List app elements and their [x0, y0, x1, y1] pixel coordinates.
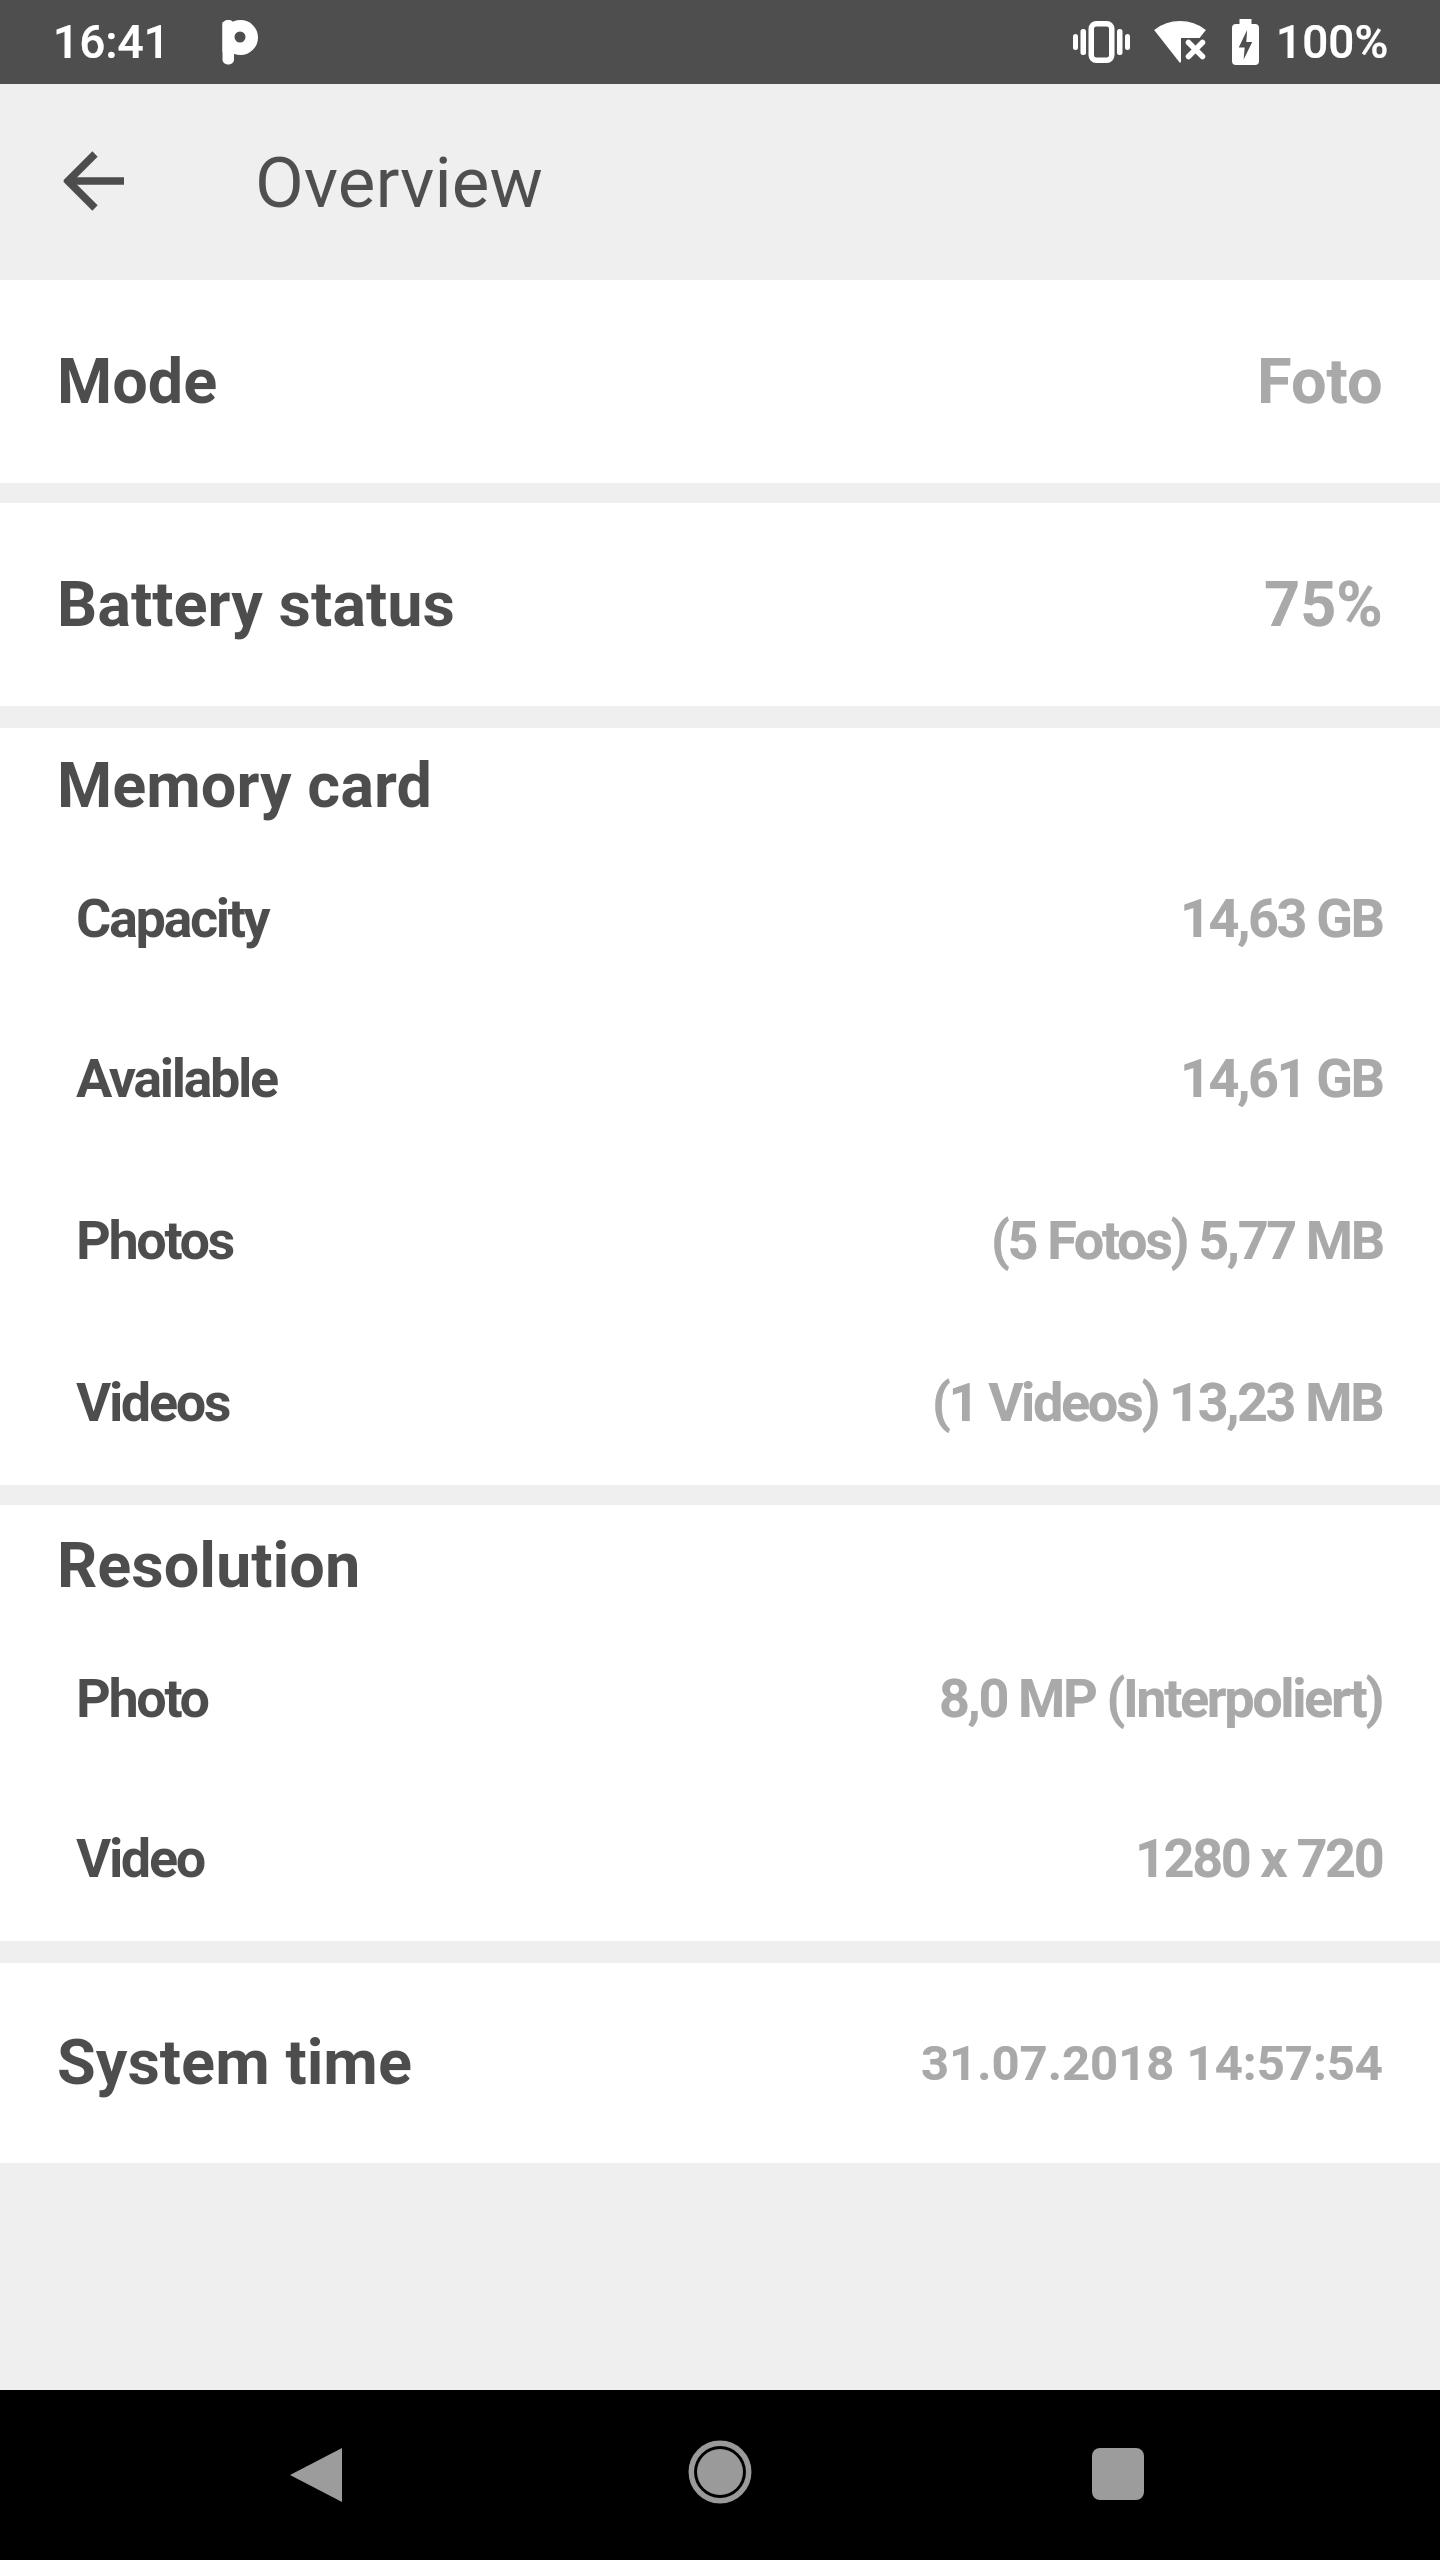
button[interactable]: Mode: [0, 280, 1440, 483]
button[interactable]: Capacity: [0, 848, 1440, 988]
staticText: Photo: [76, 1667, 208, 1730]
staticText: Battery status: [57, 568, 455, 642]
staticText: 8,0 MP (Interpoliert): [939, 1667, 1383, 1730]
staticText: 16:41: [53, 15, 170, 69]
button[interactable]: Photos: [0, 1170, 1440, 1310]
staticText: Photos: [76, 1209, 234, 1272]
button[interactable]: Battery status: [0, 503, 1440, 706]
button[interactable]: Video: [0, 1788, 1440, 1928]
staticText: 100%: [1276, 15, 1389, 69]
staticText: Memory card: [57, 749, 432, 823]
button[interactable]: Available: [0, 1008, 1440, 1148]
button[interactable]: [64, 149, 128, 213]
button[interactable]: System time: [0, 1963, 1440, 2163]
staticText: 1280 x 720: [1135, 1827, 1383, 1890]
staticText: 75%: [1264, 568, 1383, 642]
staticText: Capacity: [76, 887, 269, 950]
staticText: Mode: [57, 345, 218, 419]
button[interactable]: Videos: [0, 1332, 1440, 1472]
staticText: (1 Videos) 13,23 MB: [932, 1371, 1383, 1434]
staticText: Resolution: [57, 1529, 361, 1603]
staticText: 14,63 GB: [1180, 887, 1383, 950]
button[interactable]: [278, 2435, 354, 2515]
staticText: Foto: [1257, 345, 1383, 419]
staticText: Overview: [255, 141, 543, 224]
staticText: Available: [76, 1047, 277, 1110]
staticText: Video: [76, 1827, 204, 1890]
button[interactable]: [1080, 2436, 1156, 2512]
staticText: (5 Fotos) 5,77 MB: [991, 1209, 1383, 1272]
staticText: 31.07.2018 14:57:54: [921, 2035, 1383, 2092]
button[interactable]: [680, 2432, 760, 2512]
staticText: 14,61 GB: [1180, 1047, 1383, 1110]
staticText: System time: [57, 2026, 412, 2100]
button[interactable]: Photo: [0, 1628, 1440, 1768]
staticText: Videos: [76, 1371, 230, 1434]
